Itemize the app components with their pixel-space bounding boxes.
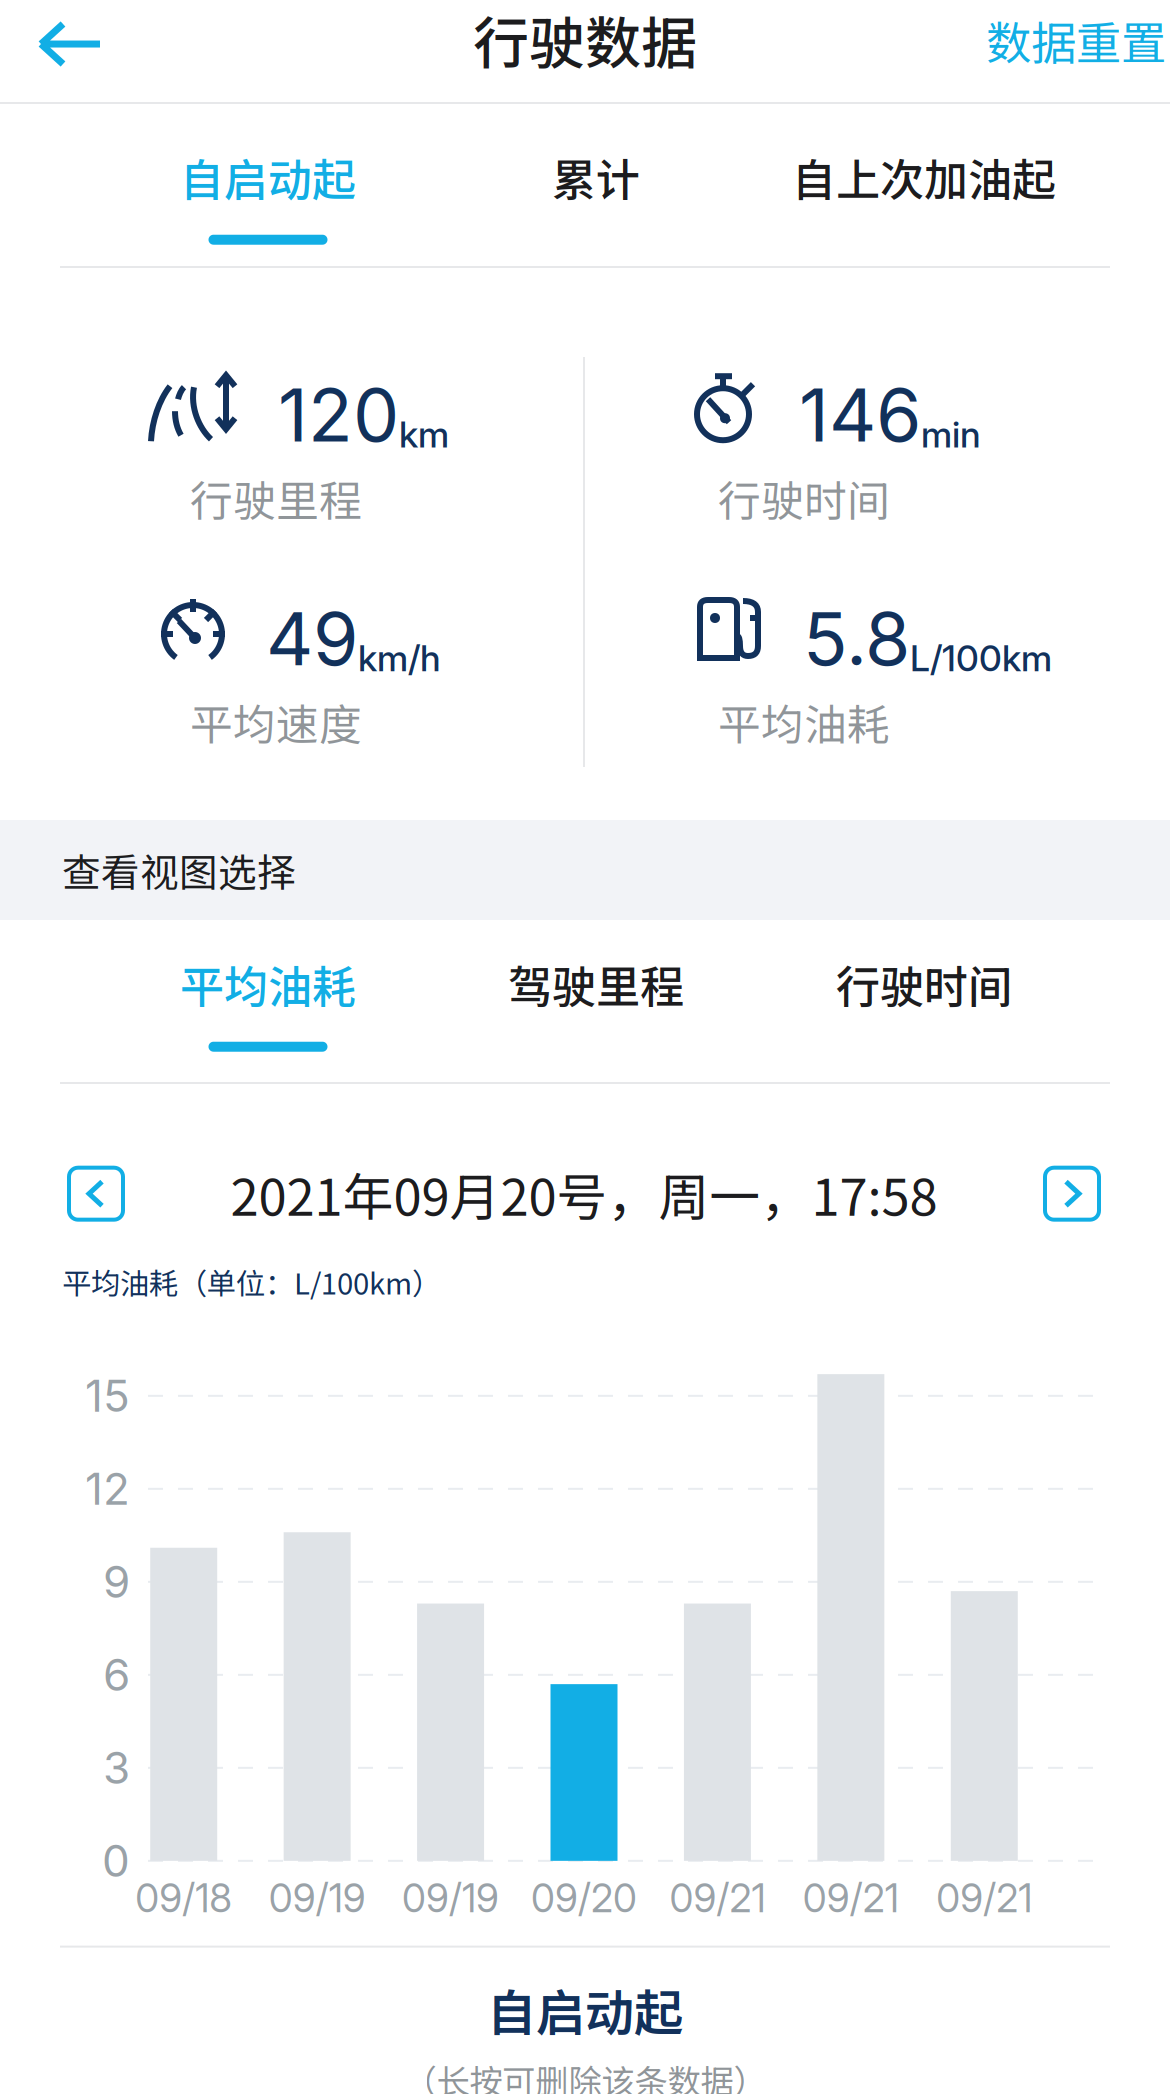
staticText: （长按可删除该条数据） xyxy=(403,2055,766,2094)
staticText: 09/21 xyxy=(669,1875,765,1922)
staticText: 累计 xyxy=(552,145,640,209)
staticText: min xyxy=(921,413,981,456)
staticText: 15 xyxy=(85,1369,130,1422)
staticText: km xyxy=(399,413,449,456)
staticText: 自启动起 xyxy=(180,145,356,209)
staticText: 6 xyxy=(103,1648,130,1701)
staticText: 自启动起 xyxy=(487,1974,683,2045)
button[interactable]: 返回 xyxy=(0,0,138,104)
staticText: 3 xyxy=(103,1741,130,1794)
button[interactable]: 自上次加油起 xyxy=(760,104,1088,266)
staticText: L/100km xyxy=(910,636,1052,680)
staticText: 查看视图选择 xyxy=(62,842,296,898)
staticText: 09/21 xyxy=(803,1875,899,1922)
staticText: 自上次加油起 xyxy=(792,145,1056,209)
button[interactable]: 平均油耗 xyxy=(104,920,432,1082)
staticText: 平均油耗（单位：L/100km） xyxy=(62,1260,441,1303)
staticText: 09/18 xyxy=(135,1875,232,1922)
staticText: 09/21 xyxy=(936,1875,1032,1922)
button[interactable]: 累计 xyxy=(432,104,760,266)
button[interactable]: 驾驶里程 xyxy=(432,920,760,1082)
staticText: 12 xyxy=(85,1462,130,1515)
staticText: 09/19 xyxy=(402,1875,499,1922)
staticText: 行驶时间 xyxy=(718,467,890,529)
staticText: 驾驶里程 xyxy=(508,952,684,1016)
staticText: 09/20 xyxy=(531,1875,637,1922)
staticText: 9 xyxy=(103,1555,130,1608)
staticText: km/h xyxy=(358,636,441,680)
staticText: 平均油耗 xyxy=(180,952,356,1016)
staticText: 行驶里程 xyxy=(190,467,362,529)
button[interactable]: 自启动起 xyxy=(104,104,432,266)
staticText: 数据重置 xyxy=(986,7,1166,73)
staticText: 平均速度 xyxy=(190,691,362,753)
staticText: 09/19 xyxy=(269,1875,366,1922)
staticText: 0 xyxy=(102,1834,130,1887)
staticText: 120 xyxy=(278,370,399,459)
staticText: 49 xyxy=(266,594,358,683)
button[interactable]: 行驶时间 xyxy=(760,920,1088,1082)
staticText: 行驶时间 xyxy=(836,952,1012,1016)
button[interactable]: 数据重置 xyxy=(986,0,1170,104)
staticText: 146 xyxy=(799,370,921,459)
staticText: 行驶数据 xyxy=(473,0,697,80)
staticText: 5.8 xyxy=(803,594,910,683)
staticText: 2021年09月20号，周一，17:58 xyxy=(230,1157,937,1230)
button[interactable]: 下一条 xyxy=(1045,1168,1099,1220)
staticText: 平均油耗 xyxy=(718,691,890,753)
button[interactable]: 上一条 xyxy=(69,1168,123,1220)
